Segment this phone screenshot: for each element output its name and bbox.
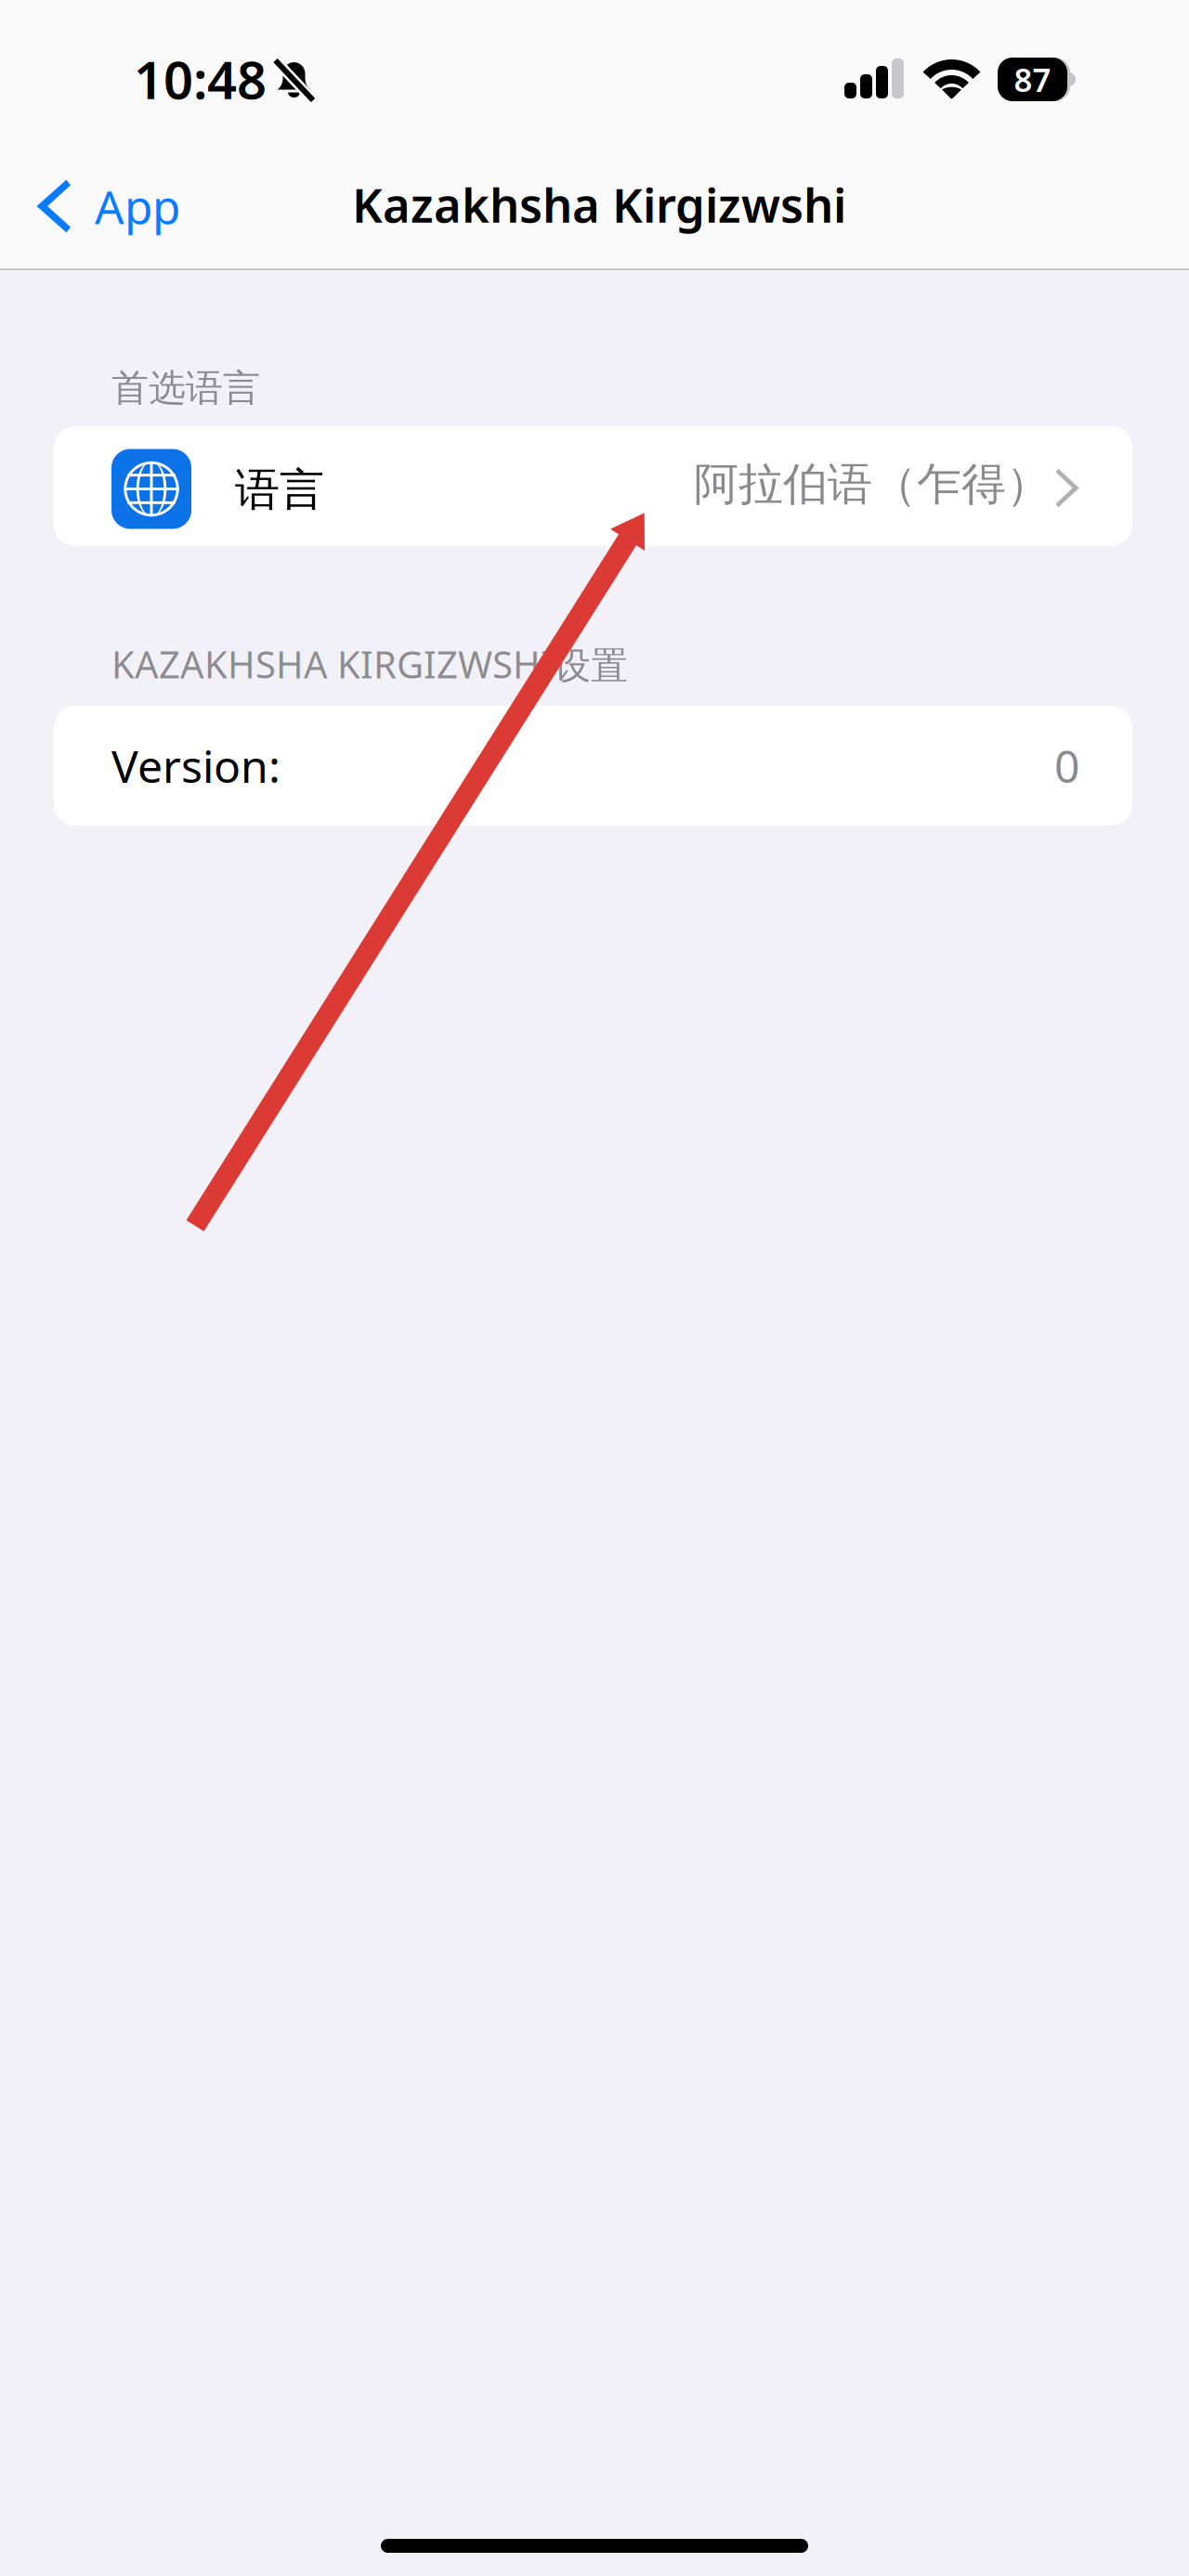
staticText: 87 [1014, 58, 1051, 101]
staticText: 语言 [235, 462, 324, 517]
staticText: KAZAKHSHA KIRGIZWSHI设置 [111, 639, 628, 689]
staticText: 首选语言 [111, 365, 260, 411]
button[interactable]: 语言 [54, 426, 1132, 546]
staticText: Kazakhsha Kirgizwshi [352, 173, 846, 236]
button[interactable]: Back to App [19, 155, 242, 257]
staticText: 0 [1054, 736, 1079, 795]
staticText: 阿拉伯语（乍得） [694, 457, 1051, 512]
staticText: 10:48 [134, 44, 267, 113]
staticText: App [95, 176, 180, 237]
staticText: Version: [111, 736, 281, 795]
